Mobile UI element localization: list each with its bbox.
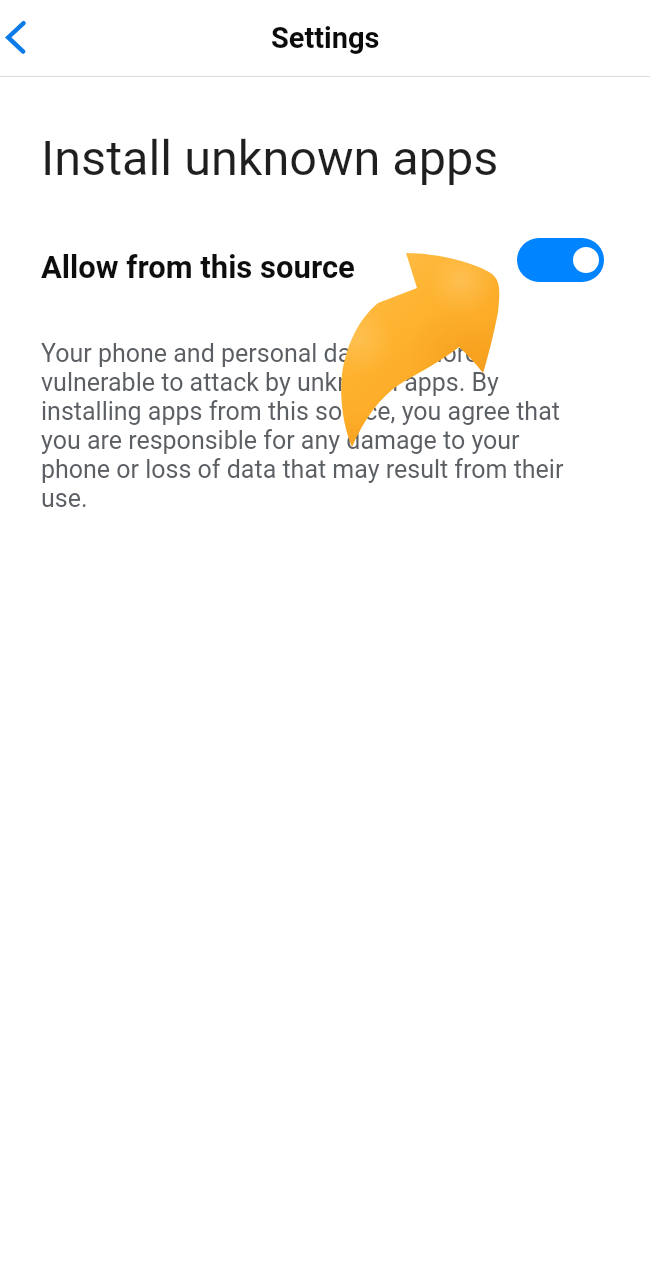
- button[interactable]: Allow from this source, on: [517, 238, 604, 282]
- button[interactable]: Back: [0, 16, 44, 60]
- staticText: Settings: [271, 21, 380, 55]
- staticText: Allow from this source: [41, 249, 355, 285]
- staticText: Your phone and personal data are more vu…: [41, 339, 566, 513]
- staticText: Install unknown apps: [41, 130, 499, 187]
